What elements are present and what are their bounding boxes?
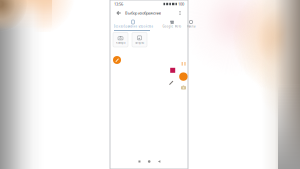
- button[interactable]: Recent apps: [138, 160, 140, 162]
- button[interactable]: Back: [158, 160, 160, 163]
- button[interactable]: Back: [115, 8, 122, 17]
- staticText: Google Фото: [162, 25, 181, 28]
- button[interactable]: Файлы: [182, 18, 200, 31]
- button[interactable]: Камера: [113, 32, 128, 47]
- button[interactable]: Google Фото: [159, 18, 185, 31]
- button[interactable]: Все изображения устройства: [114, 18, 152, 31]
- staticText: Файлы: [186, 25, 195, 28]
- staticText: Все изображения устройства: [113, 25, 152, 28]
- button[interactable]: More options: [177, 8, 183, 17]
- button[interactable]: Home: [148, 160, 150, 163]
- staticText: Выбор изображения: [125, 10, 161, 16]
- staticText: Галерея: [134, 41, 144, 44]
- staticText: Камера: [116, 41, 125, 44]
- staticText: 100: [178, 1, 184, 7]
- button[interactable]: Галерея: [132, 32, 147, 47]
- staticText: 13:56: [114, 1, 123, 7]
